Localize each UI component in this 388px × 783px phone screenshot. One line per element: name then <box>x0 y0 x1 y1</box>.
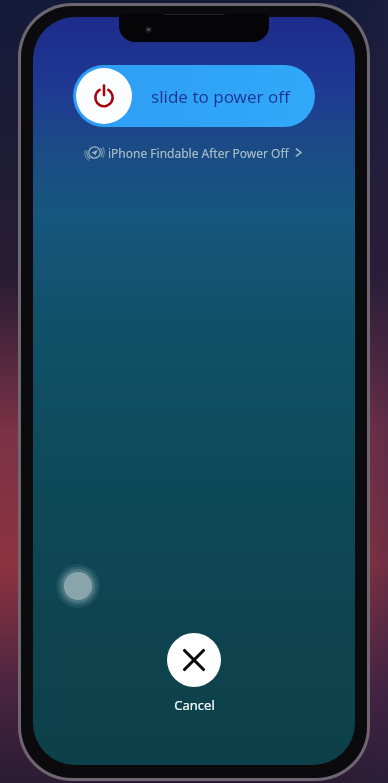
button[interactable]: slide to power off <box>73 65 315 127</box>
staticText: slide to power off <box>151 85 290 108</box>
staticText: Cancel <box>174 696 215 714</box>
button[interactable]: iPhone Findable After Power Off <box>85 143 304 162</box>
button[interactable]: Cancel <box>167 633 221 714</box>
staticText: iPhone Findable After Power Off <box>108 145 289 161</box>
